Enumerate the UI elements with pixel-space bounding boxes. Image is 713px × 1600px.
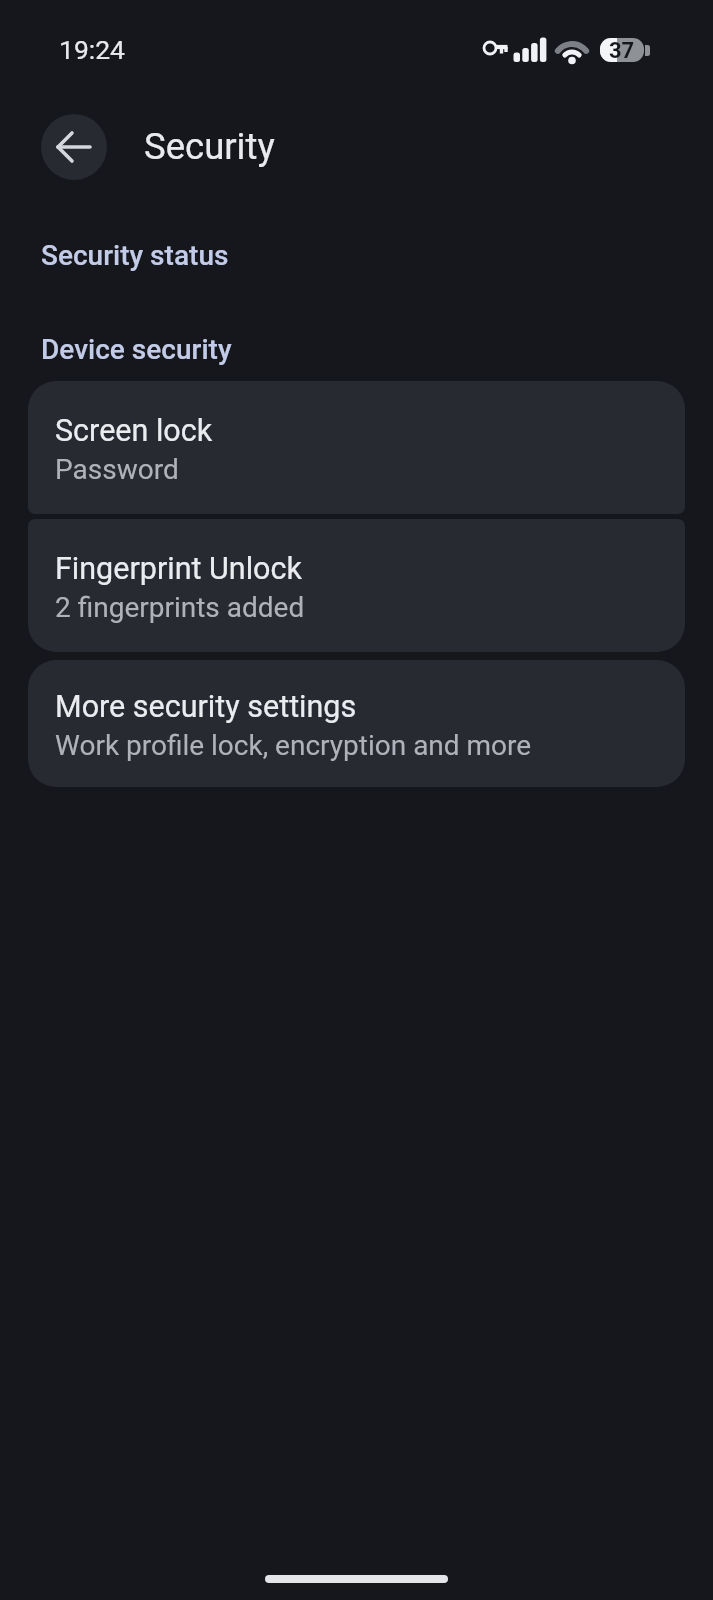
- button[interactable]: More security settings: [28, 660, 685, 787]
- staticText: Screen lock: [55, 413, 213, 449]
- button[interactable]: Screen lock: [28, 381, 685, 514]
- staticText: Fingerprint Unlock: [55, 551, 302, 587]
- staticText: Password: [55, 453, 179, 486]
- staticText: 2 fingerprints added: [55, 591, 305, 624]
- staticText: Work profile lock, encryption and more: [55, 729, 532, 762]
- staticText: Security: [144, 125, 275, 168]
- staticText: 37: [609, 38, 635, 62]
- staticText: Device security: [41, 333, 232, 366]
- button[interactable]: [41, 114, 107, 180]
- button[interactable]: Fingerprint Unlock: [28, 519, 685, 652]
- staticText: Security status: [41, 239, 229, 272]
- staticText: More security settings: [55, 689, 357, 725]
- staticText: 19:24: [59, 34, 125, 65]
